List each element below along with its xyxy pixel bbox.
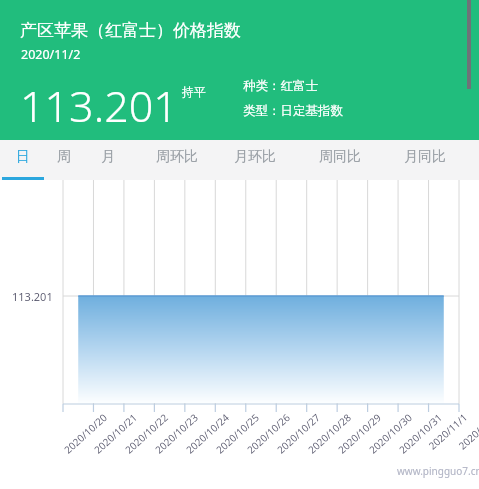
staticText: 2020/10/23 xyxy=(152,410,201,456)
staticText: 2020/11/2 xyxy=(21,46,81,63)
staticText: 月同比 xyxy=(404,148,446,166)
staticText: 2020/10/25 xyxy=(213,410,262,456)
staticText: 2020/10/30 xyxy=(366,410,415,456)
staticText: 2020/11/1 xyxy=(425,410,470,452)
staticText: 产区苹果（红富士）价格指数 xyxy=(20,20,241,41)
staticText: 周环比 xyxy=(156,148,198,166)
staticText: 113.201 xyxy=(12,289,53,304)
staticText: 持平 xyxy=(182,84,206,99)
button[interactable]: 周 xyxy=(43,140,85,180)
button[interactable]: 月同比 xyxy=(393,140,457,180)
staticText: www.pingguo7.cn xyxy=(397,464,479,478)
button[interactable]: 周同比 xyxy=(308,140,372,180)
staticText: 月 xyxy=(101,148,115,166)
staticText: 种类：红富士 xyxy=(243,78,318,94)
staticText: 2020/10/31 xyxy=(396,410,445,456)
button[interactable]: 月环比 xyxy=(223,140,287,180)
staticText: 2020/10/29 xyxy=(335,410,384,456)
staticText: 类型：日定基指数 xyxy=(243,103,343,119)
staticText: 日 xyxy=(16,148,30,166)
staticText: 周同比 xyxy=(319,148,361,166)
staticText: 2020/10/26 xyxy=(244,410,293,456)
staticText: 2020/10/21 xyxy=(91,410,140,456)
button[interactable]: 月 xyxy=(87,140,129,180)
staticText: 月环比 xyxy=(234,148,276,166)
button[interactable]: 日 xyxy=(2,140,44,180)
staticText: 113.201 xyxy=(20,76,178,135)
staticText: 周 xyxy=(57,148,71,166)
staticText: 2020/11/2 xyxy=(455,410,479,452)
staticText: 2020/10/27 xyxy=(274,410,323,456)
button[interactable]: 周环比 xyxy=(145,140,209,180)
staticText: 2020/10/28 xyxy=(305,410,354,456)
staticText: 2020/10/24 xyxy=(183,410,232,456)
staticText: 2020/10/20 xyxy=(61,410,110,456)
staticText: 2020/10/22 xyxy=(122,410,171,456)
